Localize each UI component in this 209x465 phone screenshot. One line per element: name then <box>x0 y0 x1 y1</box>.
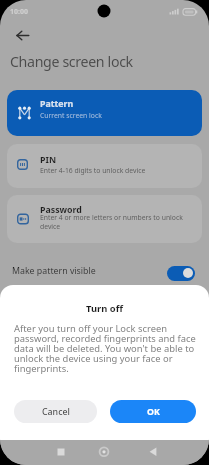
staticText: Turn off <box>86 302 123 315</box>
button[interactable] <box>93 441 115 464</box>
staticText: Current screen lock <box>40 111 102 120</box>
staticText: Make pattern visible <box>12 265 96 277</box>
staticText: PIN <box>40 154 57 166</box>
staticText: Cancel <box>42 406 70 418</box>
staticText: Pattern <box>40 98 74 110</box>
button[interactable] <box>142 441 164 464</box>
staticText: Password <box>40 204 82 216</box>
staticText: After you turn off your Lock screen pass… <box>14 322 196 375</box>
staticText: 10:00 <box>10 7 28 17</box>
staticText: OK <box>147 406 160 418</box>
staticText: Change screen lock <box>10 52 133 71</box>
button[interactable]: OK <box>110 400 196 423</box>
staticText: Enter 4-16 digits to unlock device <box>40 166 146 175</box>
button[interactable]: PIN <box>7 144 202 188</box>
button[interactable]: Cancel <box>14 400 97 423</box>
button[interactable]: Pattern <box>7 90 202 136</box>
button[interactable]: Password <box>7 195 202 243</box>
button[interactable] <box>10 27 34 44</box>
staticText: Enter 4 or more letters or numbers to un… <box>40 213 183 231</box>
button[interactable]: Make pattern visible <box>0 262 209 284</box>
button[interactable] <box>50 441 72 464</box>
